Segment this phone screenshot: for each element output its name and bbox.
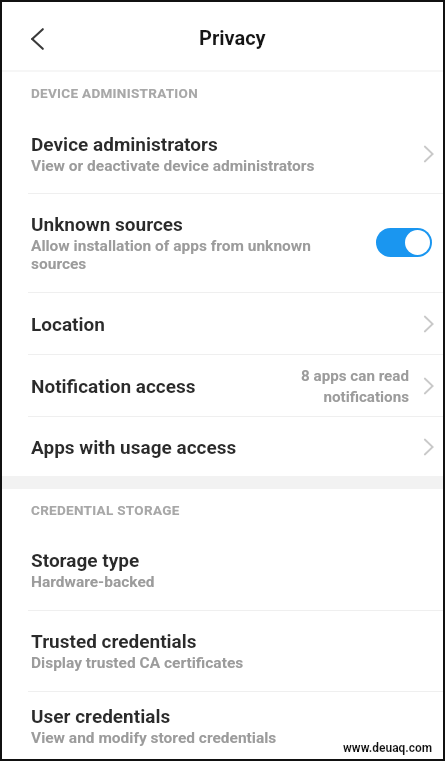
button[interactable]: Storage type: [2, 530, 443, 610]
staticText: Trusted credentials: [31, 630, 197, 652]
button[interactable]: Location: [2, 293, 443, 354]
button[interactable]: Unknown sources toggle: [376, 228, 432, 257]
staticText: Device administrators: [31, 133, 218, 155]
staticText: Privacy: [199, 26, 266, 49]
staticText: 8 apps can read notifications: [301, 367, 409, 405]
staticText: View or deactivate device administrators: [31, 157, 315, 175]
staticText: Storage type: [31, 549, 140, 571]
staticText: Unknown sources: [31, 213, 183, 235]
staticText: Allow installation of apps from unknown …: [31, 237, 311, 273]
staticText: View and modify stored credentials: [31, 729, 277, 747]
button[interactable]: User credentials: [2, 692, 443, 759]
button[interactable]: Unknown sources: [2, 194, 443, 292]
staticText: User credentials: [31, 705, 171, 727]
button[interactable]: Back: [15, 16, 63, 64]
button[interactable]: Device administrators: [2, 114, 443, 193]
staticText: Notification access: [31, 375, 301, 397]
button[interactable]: Apps with usage access: [2, 417, 443, 476]
staticText: Hardware-backed: [31, 573, 155, 591]
staticText: Apps with usage access: [31, 436, 418, 458]
button[interactable]: Trusted credentials: [2, 611, 443, 691]
staticText: www.deuaq.com: [343, 741, 433, 755]
staticText: CREDENTIAL STORAGE: [31, 502, 180, 518]
button[interactable]: Notification access: [2, 355, 443, 416]
staticText: Display trusted CA certificates: [31, 654, 244, 672]
staticText: DEVICE ADMINISTRATION: [31, 85, 199, 101]
staticText: Location: [31, 313, 418, 335]
